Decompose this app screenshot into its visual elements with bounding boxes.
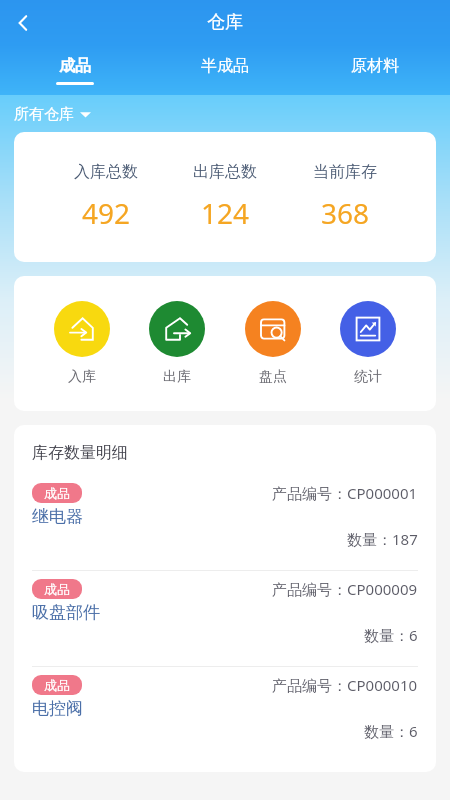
staticText: 出库总数 bbox=[193, 162, 257, 182]
button[interactable]: 当前库存 bbox=[313, 162, 377, 232]
staticText: 盘点 bbox=[259, 368, 287, 386]
staticText: 124 bbox=[201, 194, 250, 232]
staticText: 入库总数 bbox=[74, 162, 138, 182]
button[interactable]: 成品 bbox=[14, 571, 436, 666]
staticText: 成品 bbox=[44, 485, 70, 501]
staticText: 产品编号：CP000010 bbox=[272, 675, 418, 695]
staticText: 成品 bbox=[44, 581, 70, 597]
staticText: 电控阀 bbox=[32, 698, 83, 719]
staticText: 仓库 bbox=[207, 11, 243, 34]
staticText: 数量：187 bbox=[347, 529, 418, 549]
staticText: 吸盘部件 bbox=[32, 602, 100, 623]
staticText: 所有仓库 bbox=[14, 105, 74, 124]
staticText: 368 bbox=[321, 194, 370, 232]
staticText: 成品 bbox=[44, 677, 70, 693]
staticText: 数量：6 bbox=[364, 721, 418, 741]
staticText: 出库 bbox=[163, 368, 191, 386]
button[interactable]: 统计 bbox=[340, 301, 396, 386]
button[interactable]: 成品 bbox=[14, 667, 436, 762]
staticText: 原材料 bbox=[351, 56, 399, 76]
staticText: 继电器 bbox=[32, 506, 83, 527]
button[interactable]: 成品 bbox=[0, 45, 150, 95]
button[interactable]: 半成品 bbox=[150, 45, 300, 95]
staticText: 492 bbox=[82, 194, 131, 232]
button[interactable]: 入库 bbox=[54, 301, 110, 386]
staticText: 入库 bbox=[68, 368, 96, 386]
button[interactable]: Back bbox=[0, 0, 45, 45]
staticText: 产品编号：CP000009 bbox=[272, 579, 418, 599]
button[interactable]: 原材料 bbox=[300, 45, 450, 95]
button[interactable]: 所有仓库 bbox=[14, 105, 91, 124]
staticText: 库存数量明细 bbox=[32, 443, 128, 463]
staticText: 半成品 bbox=[201, 56, 249, 76]
staticText: 产品编号：CP000001 bbox=[272, 483, 418, 503]
button[interactable]: 盘点 bbox=[245, 301, 301, 386]
staticText: 当前库存 bbox=[313, 162, 377, 182]
button[interactable]: 出库 bbox=[149, 301, 205, 386]
button[interactable]: 成品 bbox=[14, 475, 436, 570]
staticText: 数量：6 bbox=[364, 625, 418, 645]
button[interactable]: 入库总数 bbox=[74, 162, 138, 232]
button[interactable]: 出库总数 bbox=[193, 162, 257, 232]
staticText: 成品 bbox=[59, 56, 91, 76]
staticText: 统计 bbox=[354, 368, 382, 386]
